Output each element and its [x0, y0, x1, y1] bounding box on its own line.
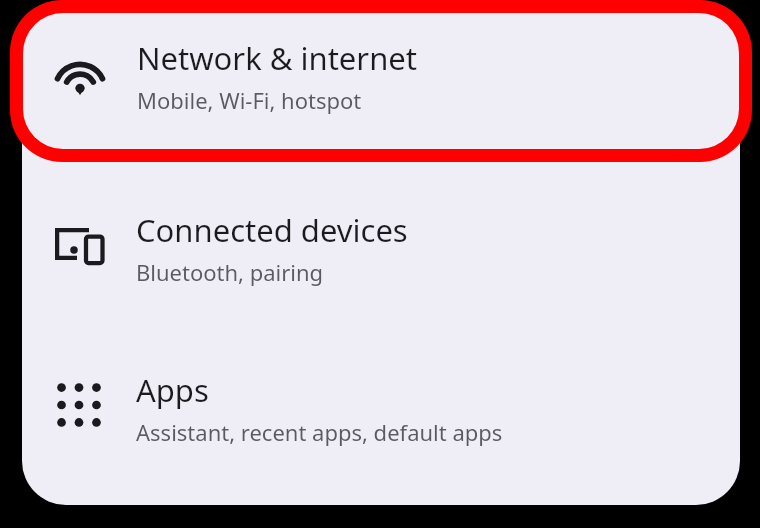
other: Connected devices	[22, 190, 136, 300]
staticText: Apps	[136, 369, 209, 411]
button[interactable]: Network and internet	[22, 30, 740, 148]
button[interactable]: Connected devices	[22, 190, 740, 308]
staticText: Network & internet	[137, 37, 417, 79]
staticText: Mobile, Wi-Fi, hotspot	[137, 85, 362, 115]
other: Network and internet	[23, 18, 137, 128]
staticText: Assistant, recent apps, default apps	[136, 417, 503, 447]
other: Network and internet	[22, 30, 136, 140]
staticText: Mobile, Wi-Fi, hotspot	[136, 97, 361, 127]
other: Apps	[22, 350, 136, 460]
button[interactable]: Apps	[22, 350, 740, 468]
staticText: Network & internet	[136, 49, 416, 91]
staticText: Connected devices	[136, 209, 408, 251]
staticText: Bluetooth, pairing	[136, 257, 324, 287]
